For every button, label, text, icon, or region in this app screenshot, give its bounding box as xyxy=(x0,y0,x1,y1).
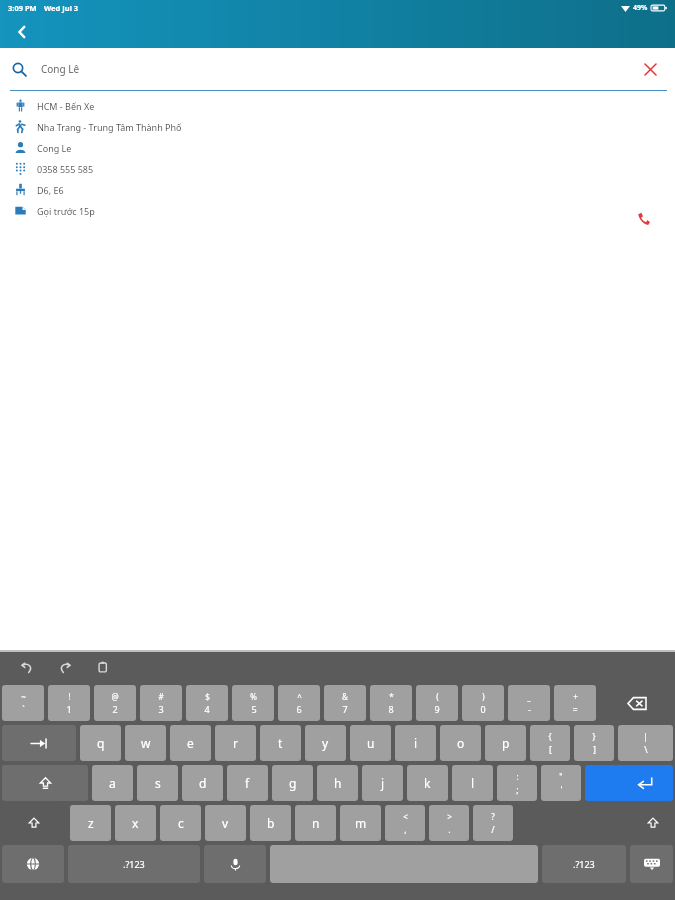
button[interactable]: Redo xyxy=(52,655,78,681)
button[interactable]: Back xyxy=(0,16,44,48)
button[interactable]: z xyxy=(70,805,111,841)
button[interactable]: 0358 555 585 xyxy=(0,158,675,179)
button[interactable]: Clipboard xyxy=(90,655,116,681)
staticText: , xyxy=(404,823,407,835)
staticText: e xyxy=(187,735,194,751)
button[interactable]: c xyxy=(160,805,201,841)
button[interactable]: > xyxy=(429,805,469,841)
button[interactable]: # xyxy=(140,685,182,721)
button[interactable]: Backspace xyxy=(600,685,673,721)
button[interactable]: Cong Le xyxy=(0,137,675,158)
staticText: { xyxy=(548,731,552,742)
button[interactable]: % xyxy=(232,685,274,721)
button[interactable]: f xyxy=(227,765,268,801)
staticText: m xyxy=(355,815,367,831)
button[interactable]: } xyxy=(574,725,614,761)
staticText: 3 xyxy=(158,703,164,715)
button[interactable]: Voice input xyxy=(204,845,266,883)
staticText: t xyxy=(278,735,283,751)
button[interactable]: v xyxy=(205,805,246,841)
staticText: _ xyxy=(527,691,531,702)
button[interactable]: Enter xyxy=(585,765,673,801)
staticText: ) xyxy=(482,691,485,702)
staticText: # xyxy=(158,691,164,702)
button[interactable]: Hide keyboard xyxy=(630,845,673,883)
button[interactable]: w xyxy=(125,725,166,761)
button[interactable]: Call xyxy=(632,207,654,229)
button[interactable]: & xyxy=(324,685,366,721)
staticText: 4 xyxy=(204,703,210,715)
button[interactable]: l xyxy=(452,765,493,801)
button[interactable]: Gọi trước 15p xyxy=(0,200,675,221)
button[interactable]: _ xyxy=(508,685,550,721)
staticText: ( xyxy=(436,691,439,702)
button[interactable]: Undo xyxy=(14,655,40,681)
button[interactable]: a xyxy=(92,765,133,801)
button[interactable]: k xyxy=(407,765,448,801)
button[interactable]: u xyxy=(350,725,391,761)
button[interactable]: @ xyxy=(94,685,136,721)
button[interactable]: " xyxy=(541,765,581,801)
button[interactable]: d xyxy=(182,765,223,801)
button[interactable]: HCM - Bến Xe xyxy=(0,95,675,116)
button[interactable]: Cong Lê xyxy=(0,48,675,90)
button[interactable]: ~ xyxy=(2,685,44,721)
button[interactable]: D6, E6 xyxy=(0,179,675,200)
button[interactable]: ^ xyxy=(278,685,320,721)
button[interactable]: g xyxy=(272,765,313,801)
staticText: o xyxy=(457,735,465,751)
button[interactable]: j xyxy=(362,765,403,801)
button[interactable]: e xyxy=(170,725,211,761)
staticText: ! xyxy=(68,691,71,702)
button[interactable]: < xyxy=(385,805,425,841)
staticText: x xyxy=(132,815,139,831)
button[interactable]: Language xyxy=(2,845,64,883)
staticText: ; xyxy=(516,783,519,795)
staticText: " xyxy=(559,771,563,782)
button[interactable]: { xyxy=(530,725,570,761)
staticText: $ xyxy=(205,691,210,702)
staticText: + xyxy=(573,691,578,702)
button[interactable]: ! xyxy=(48,685,90,721)
button[interactable]: i xyxy=(395,725,436,761)
button[interactable]: ? xyxy=(473,805,513,841)
button[interactable]: r xyxy=(215,725,256,761)
button[interactable]: Shift xyxy=(2,765,88,801)
button[interactable]: y xyxy=(305,725,346,761)
button[interactable]: s xyxy=(137,765,178,801)
button[interactable]: Nha Trang - Trung Tâm Thành Phố xyxy=(0,116,675,137)
button[interactable]: o xyxy=(440,725,481,761)
staticText: * xyxy=(389,691,394,702)
staticText: 7 xyxy=(342,703,348,715)
staticText: s xyxy=(155,775,161,791)
button[interactable]: Tab xyxy=(2,725,76,761)
button[interactable]: .?123 xyxy=(542,845,626,883)
button[interactable]: .?123 xyxy=(68,845,200,883)
staticText: ? xyxy=(491,811,495,822)
staticText: h xyxy=(334,775,342,791)
staticText: ` xyxy=(22,703,25,715)
button[interactable]: t xyxy=(260,725,301,761)
button[interactable]: b xyxy=(250,805,291,841)
button[interactable]: Shift right xyxy=(517,805,673,841)
button[interactable]: q xyxy=(80,725,121,761)
button[interactable]: | xyxy=(618,725,673,761)
button[interactable]: $ xyxy=(186,685,228,721)
staticText: [ xyxy=(549,743,552,755)
button[interactable]: Shift xyxy=(2,805,66,841)
button[interactable]: ( xyxy=(416,685,458,721)
button[interactable]: p xyxy=(485,725,526,761)
button[interactable]: : xyxy=(497,765,537,801)
button[interactable]: ) xyxy=(462,685,504,721)
staticText: & xyxy=(342,691,348,702)
button[interactable]: x xyxy=(115,805,156,841)
button[interactable]: n xyxy=(295,805,336,841)
staticText: Wed Jul 3 xyxy=(44,3,79,13)
button[interactable]: * xyxy=(370,685,412,721)
button[interactable]: Clear xyxy=(639,58,661,80)
staticText: 9 xyxy=(434,703,440,715)
button[interactable]: + xyxy=(554,685,596,721)
button[interactable]: m xyxy=(340,805,381,841)
button[interactable]: h xyxy=(317,765,358,801)
